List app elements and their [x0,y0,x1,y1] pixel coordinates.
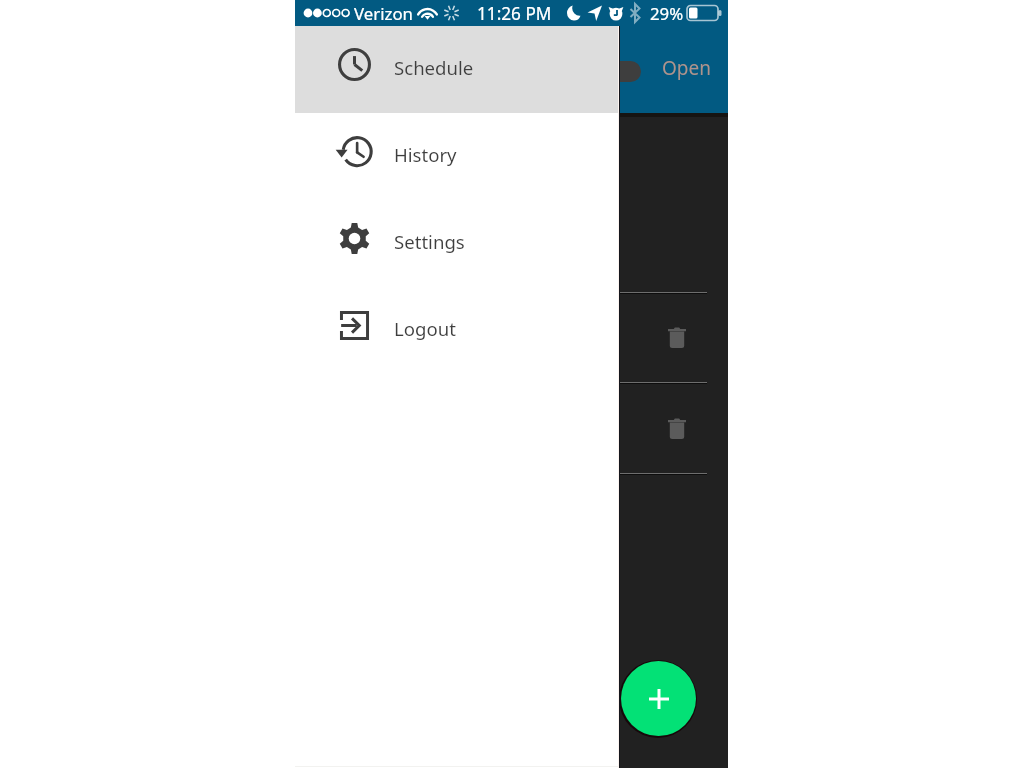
staticText: History [394,142,457,167]
button[interactable]: Open [654,48,718,88]
button[interactable]: Schedule [295,26,618,113]
staticText: Schedule [394,55,474,80]
button[interactable]: Closed [615,61,641,82]
staticText: 11:26 PM [477,2,552,25]
button[interactable]: Logout [295,287,618,374]
button[interactable]: History [295,113,618,200]
staticText: Open [662,55,711,81]
button[interactable]: Delete [657,407,697,450]
button[interactable]: Settings [295,200,618,287]
staticText: Verizon [354,2,413,25]
button[interactable]: Add [621,661,696,736]
staticText: Settings [394,229,465,254]
staticText: Logout [394,316,456,341]
button[interactable]: Delete [657,316,697,359]
staticText: 29% [650,2,684,25]
